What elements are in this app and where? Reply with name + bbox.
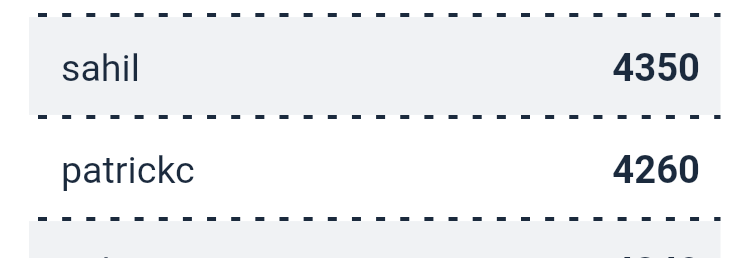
- staticText: patrickc: [61, 148, 195, 192]
- staticText: 4260: [612, 148, 700, 193]
- button[interactable]: patrickc: [29, 117, 721, 219]
- staticText: 4240: [612, 250, 700, 258]
- staticText: 4350: [612, 46, 700, 91]
- staticText: sahil: [61, 46, 140, 90]
- staticText: sohan: [61, 250, 164, 258]
- button[interactable]: sahil: [29, 15, 721, 117]
- button[interactable]: sohan: [29, 219, 721, 258]
